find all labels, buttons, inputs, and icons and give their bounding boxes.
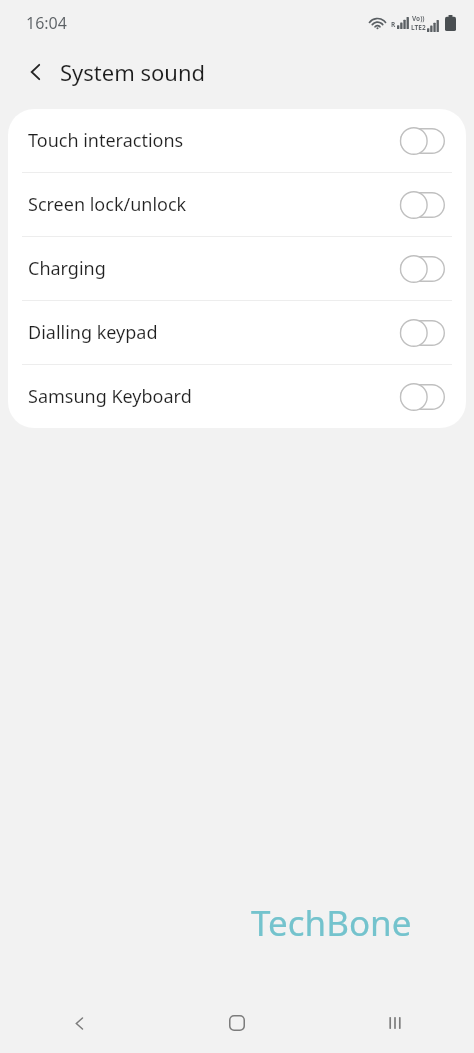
button[interactable]: Toggle off [398,253,446,285]
staticText: Touch interactions [28,128,398,153]
button[interactable]: Recent apps [316,993,474,1053]
staticText: Screen lock/unlock [28,192,398,217]
staticText: System sound [60,57,206,87]
staticText: Samsung Keyboard [28,384,398,409]
button[interactable]: Screen lock/unlock [8,173,466,236]
staticText: Dialling keypad [28,320,398,345]
button[interactable]: Toggle off [398,125,446,157]
button[interactable]: Toggle off [398,189,446,221]
button[interactable]: Toggle off [398,317,446,349]
button[interactable]: Home [158,993,316,1053]
button[interactable]: Back [17,53,55,91]
button[interactable]: Dialling keypad [8,301,466,364]
button[interactable]: Touch interactions [8,109,466,172]
staticText: Charging [28,256,398,281]
staticText: LTE2 [411,23,426,32]
staticText: R [391,20,396,29]
staticText: TechBone [251,899,412,947]
button[interactable]: Back [0,993,158,1053]
staticText: 16:04 [26,12,67,34]
button[interactable]: Samsung Keyboard [8,365,466,428]
button[interactable]: Charging [8,237,466,300]
staticText: Vo)) [412,14,425,23]
button[interactable]: Toggle off [398,381,446,413]
